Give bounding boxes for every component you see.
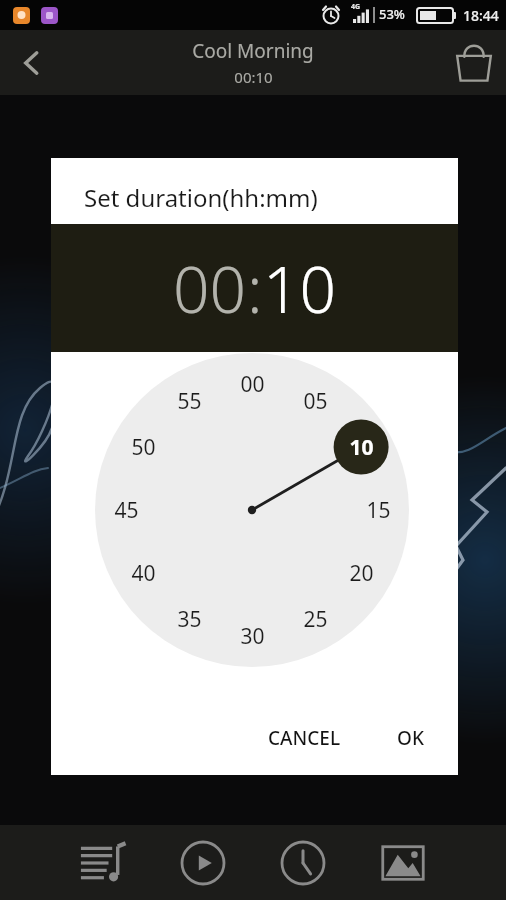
- button[interactable]: 10: [263, 245, 337, 332]
- staticText: 30: [240, 622, 265, 651]
- staticText: 20: [349, 559, 374, 588]
- staticText: 53%: [379, 5, 405, 23]
- staticText: 25: [303, 605, 328, 634]
- button[interactable]: Image: [362, 825, 444, 900]
- staticText: 00: [173, 245, 247, 332]
- staticText: 00: [240, 370, 265, 399]
- staticText: CANCEL: [268, 725, 341, 751]
- button[interactable]: Store: [442, 31, 506, 95]
- staticText: 4G: [351, 2, 361, 12]
- staticText: 40: [131, 559, 156, 588]
- staticText: 45: [114, 496, 139, 525]
- staticText: Set duration(hh:mm): [84, 181, 318, 214]
- staticText: 10: [263, 245, 337, 332]
- staticText: 50: [131, 433, 156, 462]
- staticText: 15: [366, 496, 391, 525]
- staticText: 10: [349, 433, 374, 462]
- staticText: 35: [177, 605, 202, 634]
- staticText: :: [247, 245, 263, 332]
- staticText: Cool Morning: [192, 38, 314, 64]
- staticText: 18:44: [463, 6, 499, 25]
- button[interactable]: Playlist: [62, 825, 144, 900]
- staticText: 55: [177, 387, 202, 416]
- button[interactable]: OK: [381, 715, 440, 761]
- button[interactable]: Back: [0, 31, 64, 95]
- staticText: 05: [303, 387, 328, 416]
- staticText: OK: [397, 725, 424, 751]
- button[interactable]: 00: [173, 245, 247, 332]
- button[interactable]: Play: [162, 825, 244, 900]
- staticText: 00:10: [234, 67, 273, 87]
- button[interactable]: [51, 352, 458, 775]
- button[interactable]: CANCEL: [252, 715, 357, 761]
- button[interactable]: Timer: [262, 825, 344, 900]
